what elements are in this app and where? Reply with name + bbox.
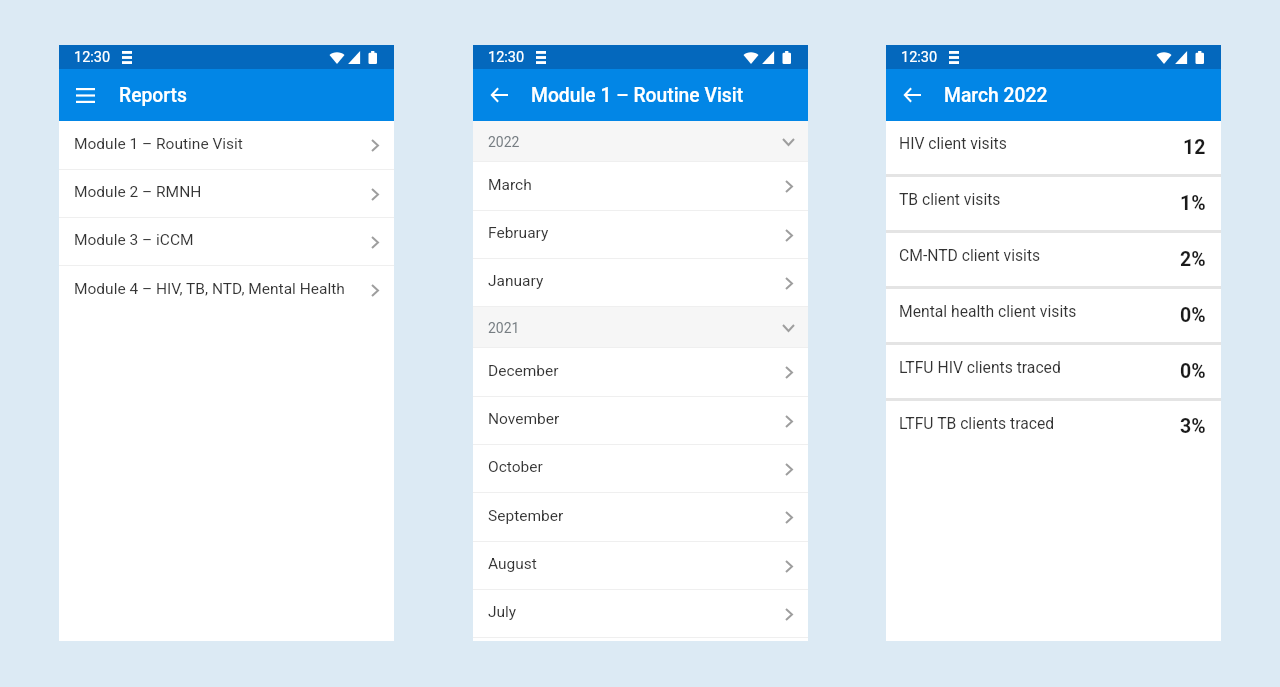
- button[interactable]: September: [473, 493, 808, 542]
- staticText: Reports: [119, 84, 187, 107]
- staticText: February: [488, 224, 549, 242]
- button[interactable]: LTFU HIV clients traced: [886, 345, 1221, 401]
- button[interactable]: HIV client visits: [886, 121, 1221, 177]
- staticText: 1%: [1180, 192, 1206, 215]
- staticText: 12:30: [901, 49, 938, 66]
- button[interactable]: Mental health client visits: [886, 289, 1221, 345]
- staticText: Module 4 – HIV, TB, NTD, Mental Health: [74, 280, 345, 298]
- button[interactable]: TB client visits: [886, 177, 1221, 233]
- button[interactable]: October: [473, 445, 808, 493]
- staticText: TB client visits: [899, 190, 1001, 208]
- button[interactable]: November: [473, 397, 808, 445]
- staticText: December: [488, 362, 559, 380]
- button[interactable]: February: [473, 211, 808, 259]
- staticText: 12:30: [488, 49, 525, 66]
- staticText: September: [488, 507, 564, 525]
- staticText: 0%: [1180, 304, 1206, 327]
- staticText: August: [488, 555, 537, 573]
- button[interactable]: December: [473, 348, 808, 397]
- button[interactable]: Module 4 – HIV, TB, NTD, Mental Health: [59, 266, 394, 315]
- button[interactable]: Module 3 – iCCM: [59, 218, 394, 266]
- button[interactable]: Module 1 – Routine Visit: [59, 121, 394, 170]
- staticText: 2022: [488, 134, 520, 150]
- staticText: HIV client visits: [899, 134, 1007, 152]
- staticText: 0%: [1180, 360, 1206, 383]
- staticText: March 2022: [944, 84, 1048, 107]
- staticText: CM-NTD client visits: [899, 246, 1041, 264]
- button[interactable]: March: [473, 162, 808, 211]
- button[interactable]: Back: [482, 78, 516, 112]
- staticText: November: [488, 410, 560, 428]
- staticText: 2%: [1180, 248, 1206, 271]
- staticText: Module 3 – iCCM: [74, 231, 194, 249]
- button[interactable]: August: [473, 542, 808, 590]
- button[interactable]: Module 2 – RMNH: [59, 170, 394, 218]
- staticText: Module 2 – RMNH: [74, 183, 202, 201]
- button[interactable]: CM-NTD client visits: [886, 233, 1221, 289]
- staticText: Module 1 – Routine Visit: [74, 135, 243, 153]
- button[interactable]: July: [473, 590, 808, 638]
- button[interactable]: LTFU TB clients traced: [886, 401, 1221, 456]
- staticText: July: [488, 603, 517, 621]
- staticText: March: [488, 176, 532, 194]
- staticText: 2021: [488, 320, 520, 336]
- staticText: 3%: [1180, 415, 1206, 438]
- staticText: Mental health client visits: [899, 302, 1077, 320]
- button[interactable]: Menu: [66, 76, 104, 114]
- button[interactable]: Back: [895, 78, 929, 112]
- button[interactable]: January: [473, 259, 808, 307]
- staticText: LTFU HIV clients traced: [899, 358, 1061, 376]
- staticText: Module 1 – Routine Visit: [531, 84, 744, 107]
- staticText: October: [488, 458, 543, 476]
- button[interactable]: 2022: [473, 121, 808, 162]
- staticText: LTFU TB clients traced: [899, 414, 1055, 432]
- staticText: 12: [1183, 136, 1206, 159]
- staticText: January: [488, 272, 544, 290]
- staticText: 12:30: [74, 49, 111, 66]
- button[interactable]: 2021: [473, 307, 808, 348]
